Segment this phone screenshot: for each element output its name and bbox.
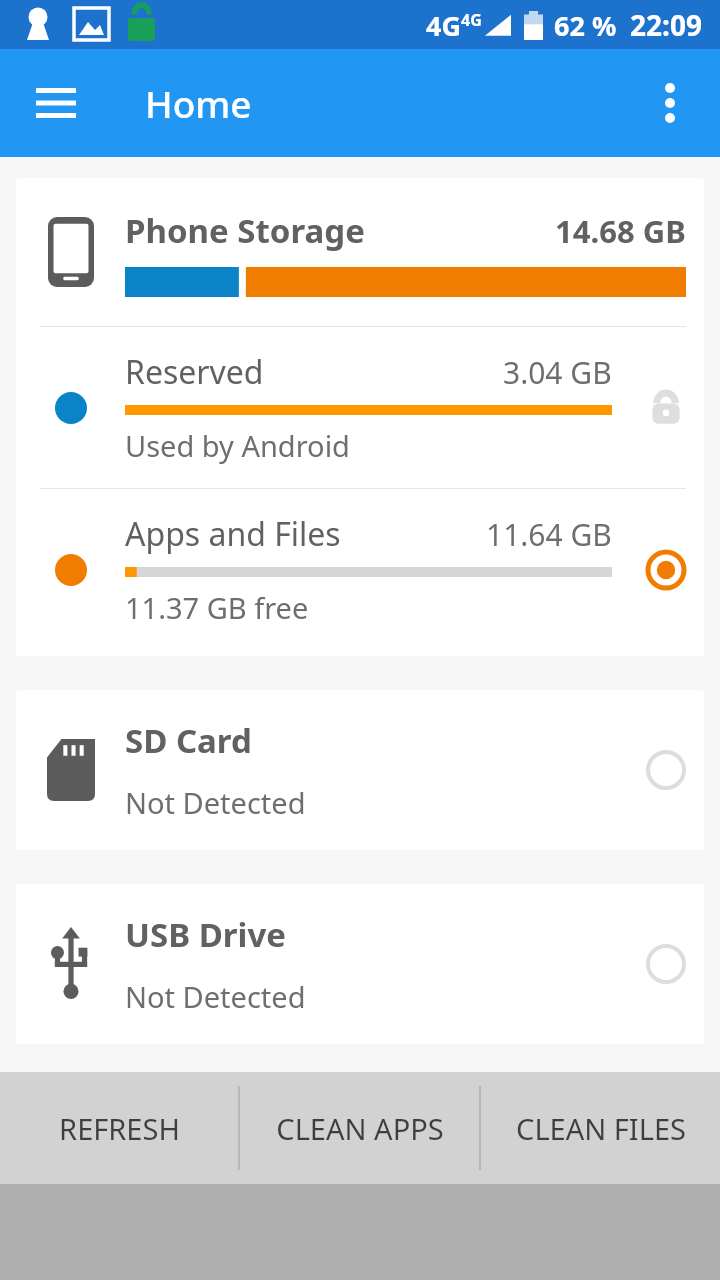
staticText: CLEAN FILES [516,1109,686,1148]
button[interactable]: USB Drive [16,884,704,1044]
button[interactable]: Select SD Card [628,690,704,850]
button[interactable]: SD Card [16,690,704,850]
staticText: 22:09 [630,6,702,44]
staticText: USB Drive [125,912,286,957]
staticText: 11.37 GB free [125,588,309,627]
staticText: 4G [461,9,482,31]
staticText: CLEAN APPS [276,1109,444,1148]
staticText: Not Detected [125,783,306,822]
staticText: 14.68 GB [555,210,686,252]
button[interactable]: Phone Storage [16,178,704,326]
staticText: 4G [426,7,461,44]
staticText: Apps and Files [125,512,341,556]
staticText: 11.64 GB [486,514,612,555]
staticText: Phone Storage [125,208,365,253]
staticText: Not Detected [125,977,306,1016]
button[interactable]: REFRESH [0,1072,238,1184]
staticText: 3.04 GB [503,352,612,393]
button[interactable]: Select [628,489,704,650]
staticText: REFRESH [59,1109,180,1148]
button[interactable]: CLEAN FILES [481,1072,720,1184]
button[interactable]: CLEAN APPS [240,1072,479,1184]
staticText: SD Card [125,718,252,763]
button[interactable]: Select USB Drive [628,884,704,1044]
button[interactable]: Apps and Files [16,489,704,650]
staticText: Reserved [125,350,264,394]
staticText: Home [145,78,252,128]
button[interactable]: Locked [628,327,704,488]
staticText: Used by Android [125,426,350,465]
button[interactable]: Reserved [16,327,704,488]
button[interactable]: More options [634,67,706,139]
staticText: 62 % [554,7,617,44]
button[interactable]: Open navigation drawer [20,67,92,139]
